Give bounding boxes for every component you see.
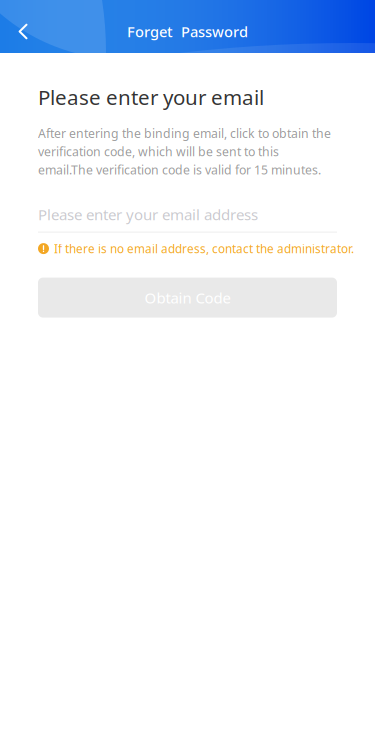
staticText: Please enter your email address — [38, 204, 258, 225]
staticText: email.The verification code is valid for… — [38, 161, 321, 178]
button[interactable]: Obtain Code — [38, 278, 337, 318]
staticText: If there is no email address, contact th… — [54, 241, 354, 257]
button[interactable]: Back — [1, 9, 45, 53]
staticText: verification code, which will be sent to… — [38, 143, 279, 160]
staticText: Forget Password — [127, 21, 248, 41]
staticText: Obtain Code — [144, 287, 230, 308]
staticText: After entering the binding email, click … — [38, 125, 331, 142]
staticText: Please enter your email — [38, 83, 264, 111]
